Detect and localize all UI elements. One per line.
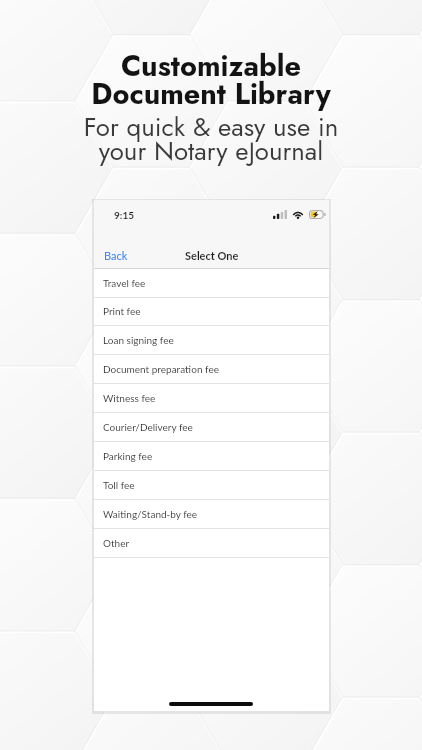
- staticText: 9:15: [114, 209, 134, 221]
- staticText: For quick & easy use in your Notary eJou…: [0, 108, 422, 170]
- button[interactable]: Toll fee: [94, 471, 329, 500]
- other: Cellular signal: [273, 210, 287, 219]
- button[interactable]: Loan signing fee: [94, 326, 329, 355]
- button[interactable]: Other: [94, 529, 329, 558]
- button[interactable]: Parking fee: [94, 442, 329, 471]
- button[interactable]: Waiting/Stand-by fee: [94, 500, 329, 529]
- staticText: Loan signing fee: [103, 334, 174, 346]
- button[interactable]: Courier/Delivery fee: [94, 413, 329, 442]
- button[interactable]: Print fee: [94, 297, 329, 326]
- staticText: Customizable Document Library: [0, 45, 422, 115]
- staticText: Courier/Delivery fee: [103, 421, 193, 433]
- other: Wi-Fi: [292, 210, 304, 219]
- staticText: Waiting/Stand-by fee: [103, 508, 198, 520]
- other: Battery charging: [309, 210, 326, 219]
- staticText: Toll fee: [103, 479, 135, 491]
- staticText: Select One: [185, 249, 239, 262]
- button[interactable]: Witness fee: [94, 384, 329, 413]
- staticText: Back: [104, 249, 128, 262]
- staticText: Print fee: [103, 305, 141, 317]
- staticText: Travel fee: [103, 277, 146, 289]
- staticText: Parking fee: [103, 450, 153, 462]
- staticText: Witness fee: [103, 392, 156, 404]
- button[interactable]: Travel fee: [94, 269, 329, 298]
- button[interactable]: Document preparation fee: [94, 355, 329, 384]
- staticText: Other: [103, 537, 130, 549]
- staticText: Document preparation fee: [103, 363, 219, 375]
- button[interactable]: Back: [97, 244, 135, 267]
